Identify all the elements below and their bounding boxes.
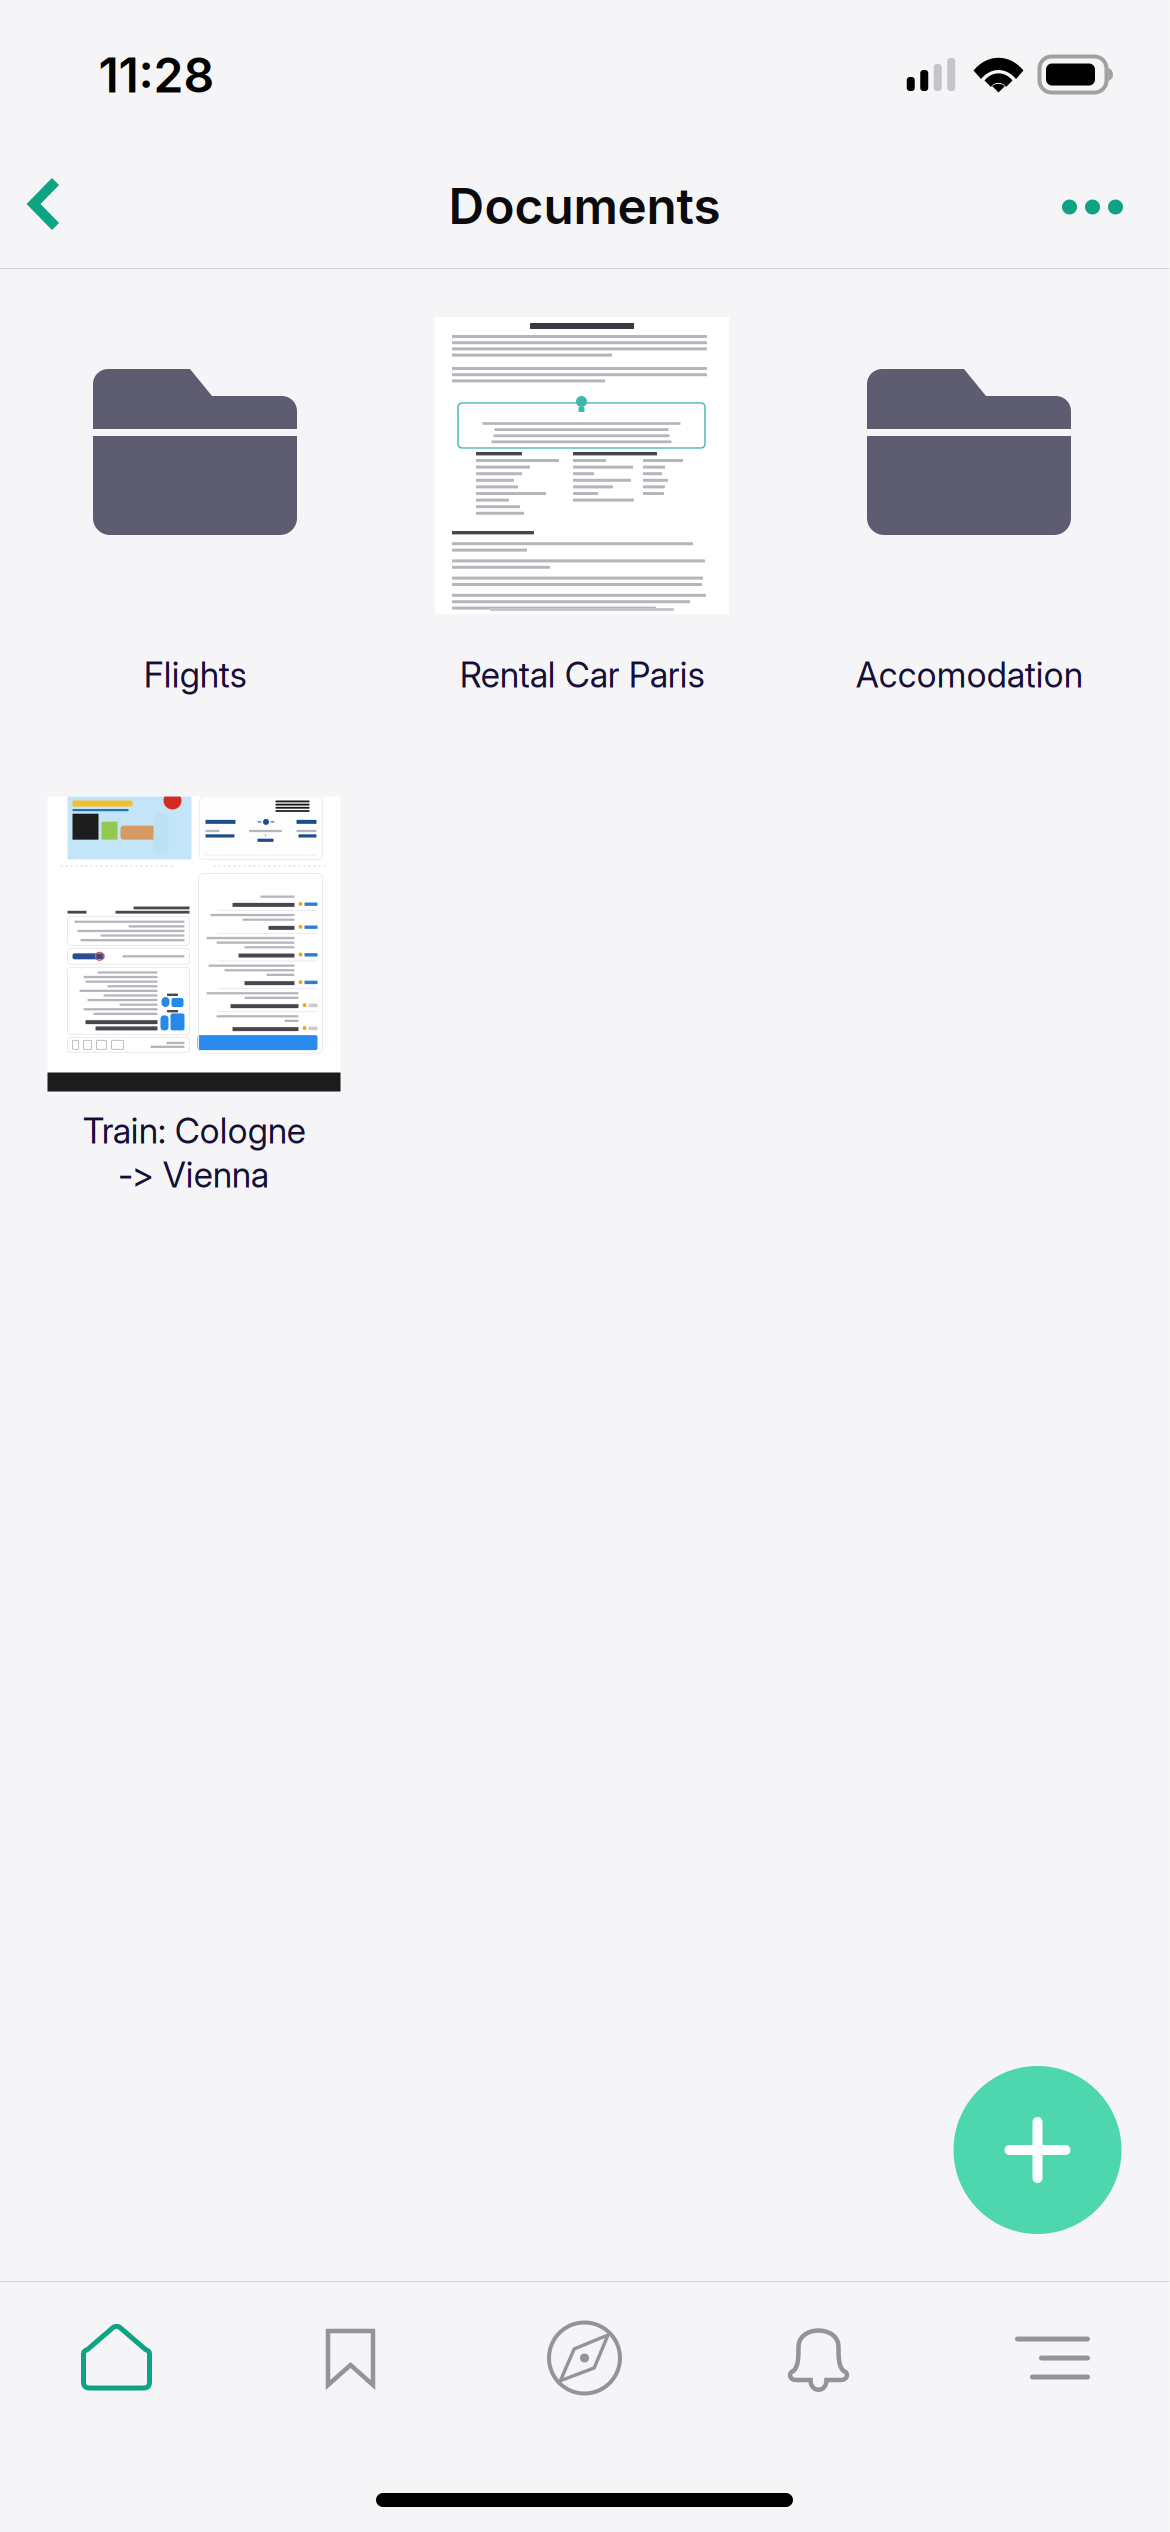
staticText: Rental Car Paris	[459, 654, 704, 696]
button[interactable]: Notifications	[701, 2282, 935, 2434]
button[interactable]: Train: Cologne ‐> Vienna	[0, 788, 387, 1208]
button[interactable]: Saved	[233, 2282, 467, 2434]
button[interactable]: Home	[0, 2282, 233, 2434]
button[interactable]: Add document	[953, 2066, 1121, 2234]
button[interactable]: More options	[1017, 136, 1169, 268]
button[interactable]: Accomodation	[775, 318, 1162, 738]
staticText: Documents	[448, 176, 720, 236]
button[interactable]: Menu	[935, 2282, 1169, 2434]
button[interactable]: Flights	[1, 318, 388, 738]
button[interactable]: Explore	[467, 2282, 701, 2434]
staticText: 11:28	[98, 46, 214, 104]
staticText: Train: Cologne ‐> Vienna	[82, 1110, 305, 1196]
staticText: Flights	[143, 654, 246, 696]
button[interactable]: Rental Car Paris	[388, 318, 775, 738]
button[interactable]: Back	[0, 136, 95, 268]
staticText: Accomodation	[855, 654, 1082, 696]
